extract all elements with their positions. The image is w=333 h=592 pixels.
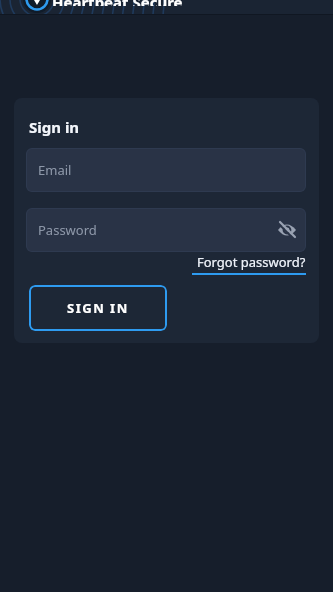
button[interactable]: Forgot password? bbox=[192, 253, 306, 275]
button[interactable] bbox=[275, 218, 299, 242]
button[interactable]: Email bbox=[26, 148, 306, 192]
staticText: Heartbeat Secure bbox=[52, 0, 183, 6]
button[interactable]: Password bbox=[26, 208, 306, 252]
staticText: Email bbox=[38, 161, 72, 179]
staticText: Forgot password? bbox=[197, 253, 306, 271]
button[interactable]: SIGN IN bbox=[29, 285, 167, 331]
staticText: Sign in bbox=[29, 117, 80, 137]
staticText: SIGN IN bbox=[67, 299, 129, 317]
staticText: Password bbox=[38, 221, 97, 239]
